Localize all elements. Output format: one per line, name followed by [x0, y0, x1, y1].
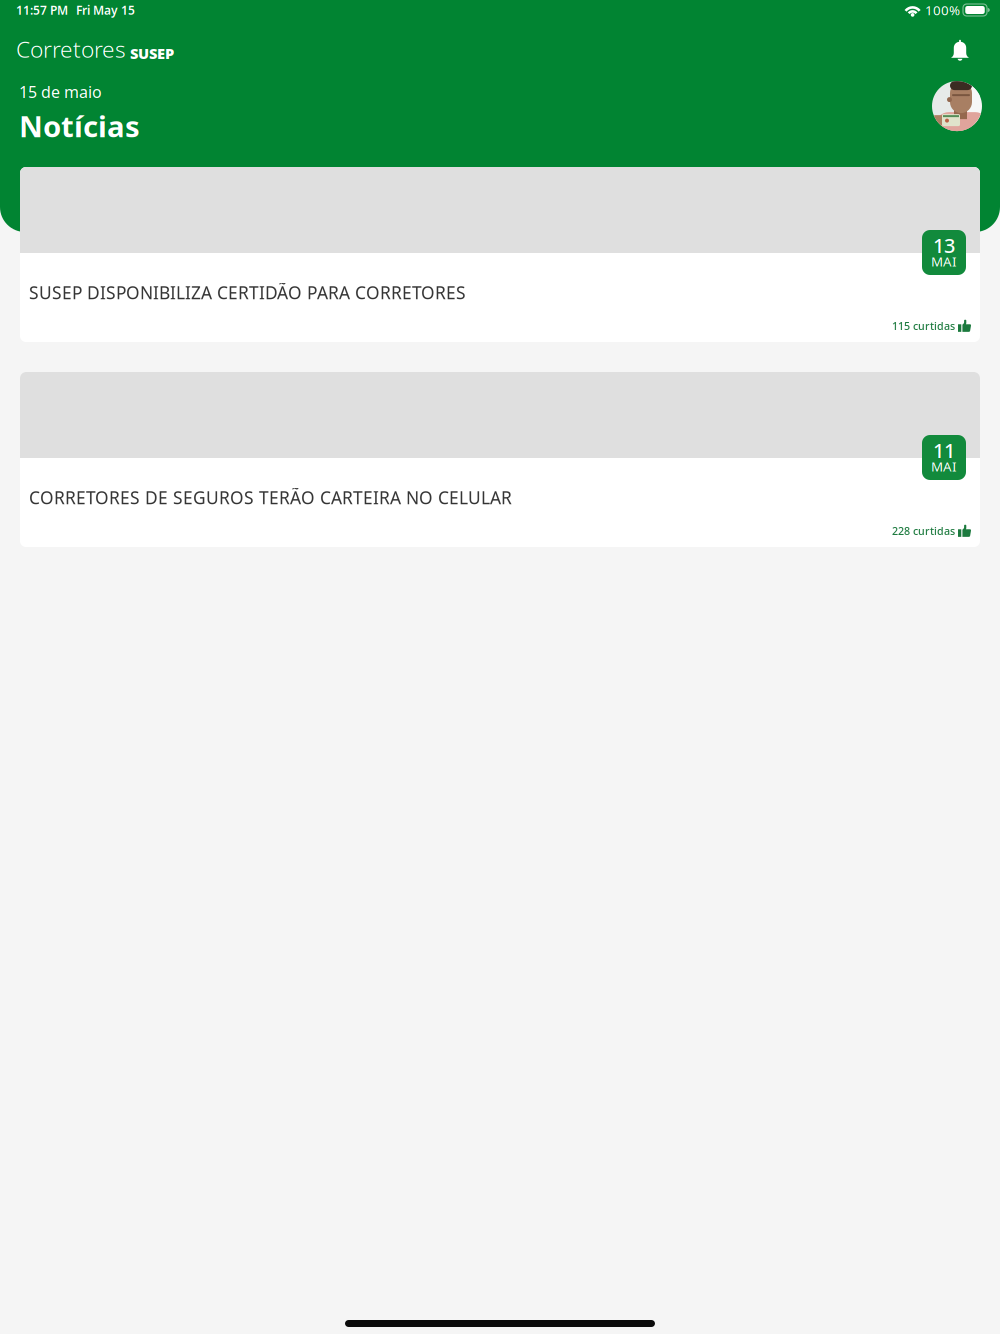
staticText: 100%	[925, 1, 960, 19]
staticText: Corretores	[16, 34, 126, 64]
staticText: 13	[933, 232, 955, 259]
button[interactable]: Perfil	[932, 81, 982, 131]
button[interactable]: 228 curtidas	[892, 524, 971, 538]
button[interactable]: CORRETORES DE SEGUROS TERÃO CARTEIRA NO …	[20, 372, 980, 547]
staticText: 228 curtidas	[892, 524, 955, 538]
staticText: 115 curtidas	[892, 319, 955, 333]
staticText: Fri May 15	[76, 2, 135, 18]
staticText: CORRETORES DE SEGUROS TERÃO CARTEIRA NO …	[29, 486, 512, 509]
button[interactable]: 115 curtidas	[892, 319, 971, 333]
button[interactable]: Notificações	[951, 40, 969, 64]
staticText: SUSEP DISPONIBILIZA CERTIDÃO PARA CORRET…	[29, 281, 466, 304]
staticText: MAI	[931, 253, 957, 270]
staticText: SUSEP	[130, 44, 174, 63]
staticText: 15 de maio	[19, 81, 102, 102]
staticText: 11:57 PM	[16, 2, 68, 18]
staticText: Notícias	[19, 106, 140, 145]
staticText: MAI	[931, 458, 957, 475]
button[interactable]: SUSEP DISPONIBILIZA CERTIDÃO PARA CORRET…	[20, 167, 980, 342]
staticText: 11	[933, 437, 955, 464]
